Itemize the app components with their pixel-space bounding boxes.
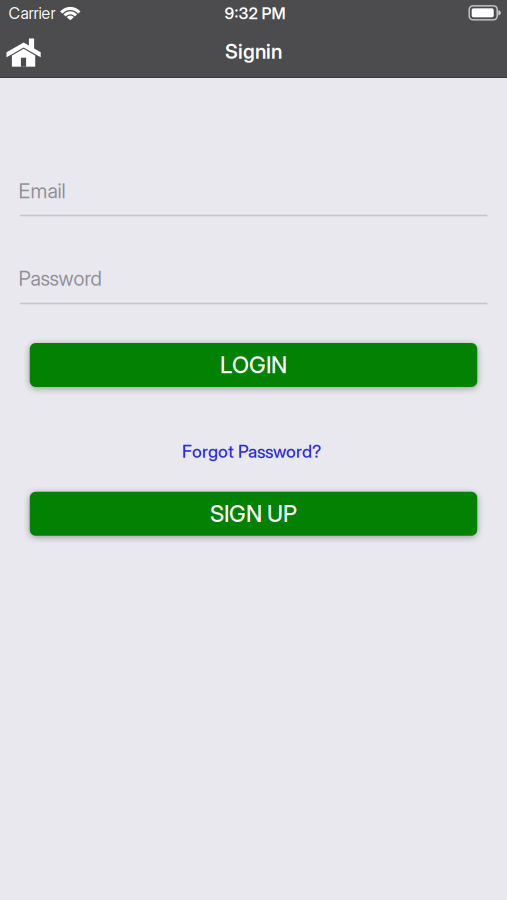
staticText: Signin: [225, 40, 282, 63]
staticText: Email: [18, 179, 65, 203]
button[interactable]: SIGN UP: [30, 492, 477, 536]
staticText: SIGN UP: [210, 500, 297, 527]
button[interactable]: LOGIN: [30, 343, 477, 387]
button[interactable]: Forgot Password?: [182, 441, 321, 462]
button[interactable]: [1, 33, 45, 73]
staticText: 9:32 PM: [224, 4, 285, 23]
staticText: Carrier: [8, 4, 55, 23]
staticText: Password: [18, 267, 101, 290]
staticText: Forgot Password?: [182, 441, 321, 462]
staticText: LOGIN: [220, 352, 287, 378]
